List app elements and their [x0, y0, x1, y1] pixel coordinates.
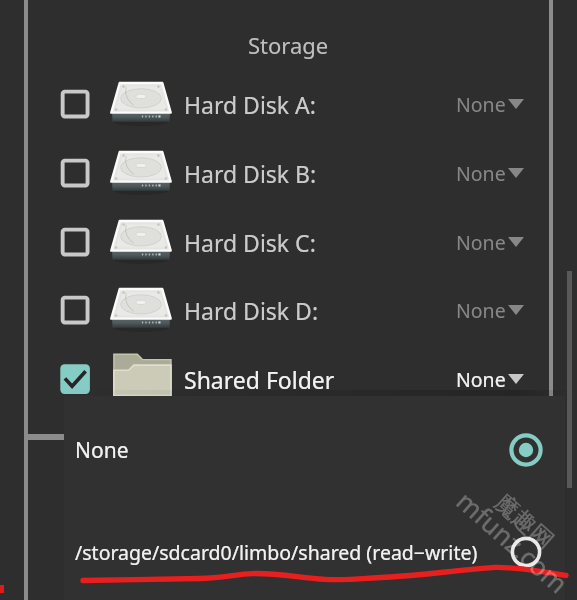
- button[interactable]: Unchecked: [60, 289, 400, 331]
- button[interactable]: None: [456, 157, 524, 189]
- staticText: Hard Disk C:: [184, 227, 316, 258]
- other: Unchecked: [60, 227, 90, 257]
- button[interactable]: Checked: [60, 358, 400, 400]
- button[interactable]: /storage/sdcard0/limbo/shared (read−writ…: [75, 532, 543, 572]
- button[interactable]: None: [456, 294, 524, 326]
- other: Not selected: [509, 535, 543, 569]
- other: Selected: [509, 433, 543, 467]
- button[interactable]: None: [456, 363, 524, 395]
- other: Unchecked: [60, 158, 90, 188]
- staticText: None: [456, 229, 506, 256]
- button[interactable]: None: [456, 226, 524, 258]
- staticText: None: [456, 297, 506, 324]
- button[interactable]: Unchecked: [60, 221, 400, 263]
- other: Unchecked: [60, 295, 90, 325]
- staticText: None: [456, 160, 506, 187]
- staticText: Hard Disk D:: [184, 295, 319, 326]
- staticText: 魔趣网: [489, 488, 560, 555]
- button[interactable]: None: [75, 430, 543, 470]
- staticText: None: [75, 436, 129, 465]
- staticText: Shared Folder: [184, 364, 335, 395]
- staticText: Hard Disk B:: [184, 158, 317, 189]
- button[interactable]: Unchecked: [60, 152, 400, 194]
- button[interactable]: Unchecked: [60, 83, 400, 125]
- other: Unchecked: [60, 89, 90, 119]
- staticText: mfunz.com: [453, 483, 576, 597]
- button[interactable]: None: [456, 88, 524, 120]
- staticText: Storage: [248, 30, 329, 60]
- staticText: /storage/sdcard0/limbo/shared (read−writ…: [75, 539, 478, 566]
- staticText: Hard Disk A:: [184, 89, 316, 120]
- other: Checked: [60, 364, 90, 394]
- staticText: None: [456, 366, 506, 393]
- staticText: None: [456, 91, 506, 118]
